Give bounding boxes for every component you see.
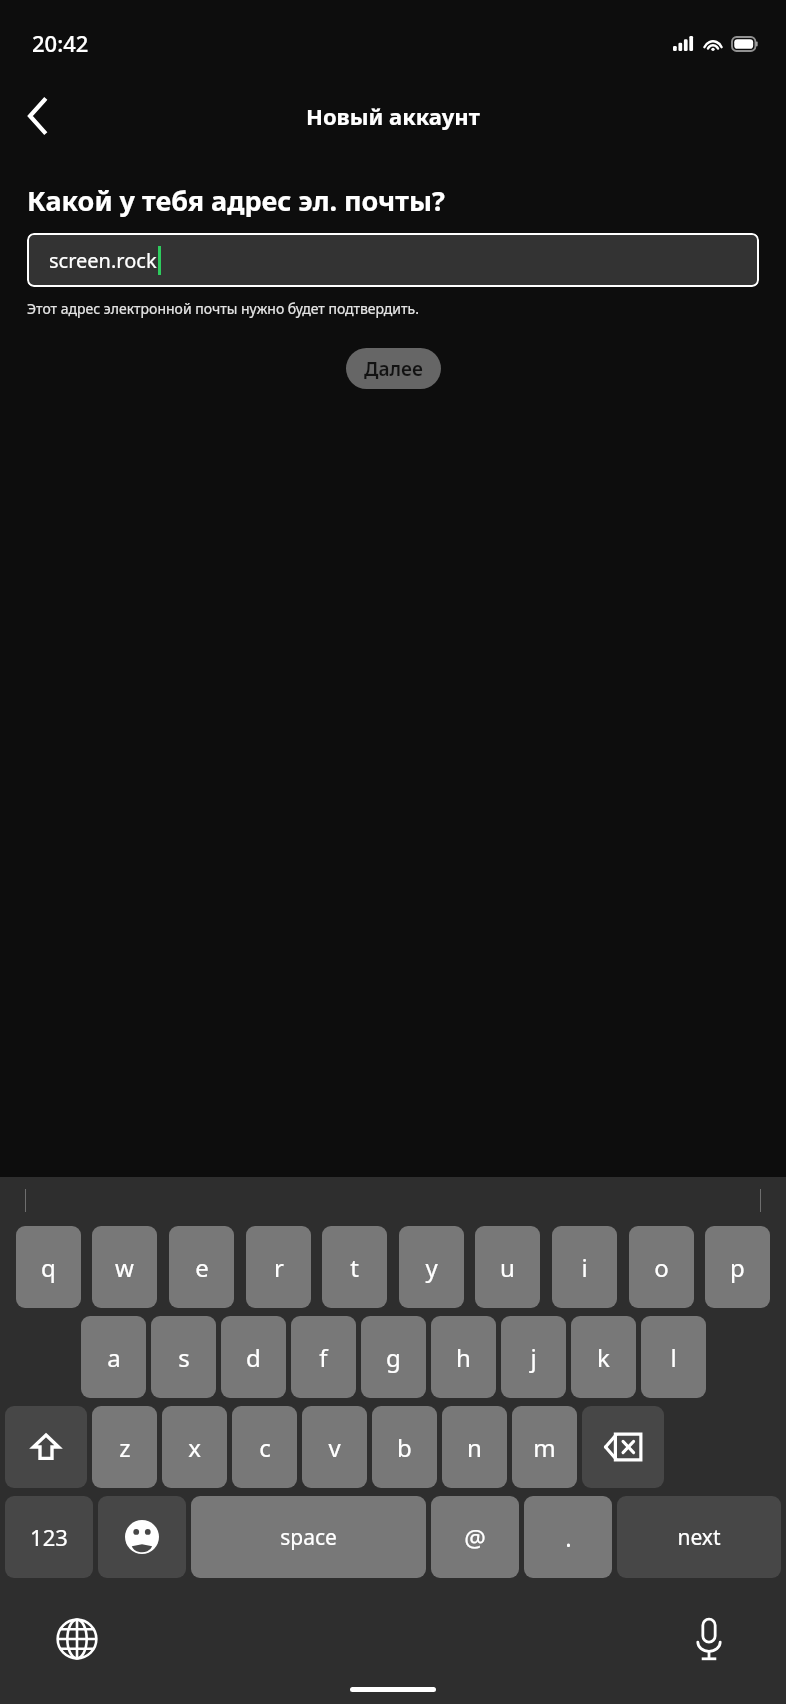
staticText: Этот адрес электронной почты нужно будет… [27, 299, 759, 318]
button[interactable]: y [399, 1226, 464, 1308]
button[interactable]: Эмодзи [98, 1496, 186, 1578]
button[interactable]: p [705, 1226, 770, 1308]
button[interactable]: e [169, 1226, 234, 1308]
button[interactable]: n [442, 1406, 507, 1488]
button[interactable]: z [92, 1406, 157, 1488]
button[interactable]: v [302, 1406, 367, 1488]
staticText: d [246, 1341, 261, 1374]
staticText: u [500, 1251, 515, 1284]
button[interactable]: x [162, 1406, 227, 1488]
staticText: s [178, 1341, 190, 1374]
button[interactable]: s [151, 1316, 216, 1398]
staticText: t [350, 1251, 359, 1284]
button[interactable]: o [629, 1226, 694, 1308]
button[interactable]: k [571, 1316, 636, 1398]
button[interactable]: Голосовой ввод [680, 1610, 738, 1668]
staticText: Далее [364, 356, 423, 382]
button[interactable]: m [512, 1406, 577, 1488]
button[interactable]: t [322, 1226, 387, 1308]
button[interactable]: @ [431, 1496, 519, 1578]
staticText: p [730, 1251, 745, 1284]
button[interactable]: Далее [346, 348, 441, 389]
button[interactable]: Shift [5, 1406, 87, 1488]
staticText: z [119, 1431, 131, 1464]
staticText: w [115, 1251, 134, 1284]
button[interactable]: i [552, 1226, 617, 1308]
button[interactable]: c [232, 1406, 297, 1488]
button[interactable]: j [501, 1316, 566, 1398]
staticText: space [280, 1523, 337, 1552]
button[interactable]: d [221, 1316, 286, 1398]
button[interactable]: space [191, 1496, 426, 1578]
staticText: r [274, 1251, 284, 1284]
button[interactable]: Сменить язык [48, 1610, 106, 1668]
button[interactable]: . [524, 1496, 612, 1578]
staticText: o [654, 1251, 669, 1284]
staticText: c [259, 1431, 271, 1464]
button[interactable]: Удалить [582, 1406, 664, 1488]
button[interactable]: l [641, 1316, 706, 1398]
button[interactable]: u [475, 1226, 540, 1308]
staticText: j [530, 1341, 537, 1374]
button[interactable]: r [246, 1226, 311, 1308]
button[interactable]: screen.rock [27, 233, 759, 287]
staticText: m [533, 1431, 556, 1464]
button[interactable]: g [361, 1316, 426, 1398]
staticText: Какой у тебя адрес эл. почты? [27, 182, 759, 219]
staticText: a [107, 1341, 121, 1374]
staticText: Новый аккаунт [306, 101, 480, 131]
button[interactable]: Назад [10, 88, 66, 144]
button[interactable]: b [372, 1406, 437, 1488]
staticText: y [425, 1251, 438, 1284]
staticText: next [677, 1523, 721, 1552]
button[interactable]: h [431, 1316, 496, 1398]
staticText: h [456, 1341, 471, 1374]
staticText: x [188, 1431, 201, 1464]
staticText: l [670, 1341, 677, 1374]
staticText: i [581, 1251, 588, 1284]
button[interactable]: next [617, 1496, 781, 1578]
staticText: 123 [30, 1522, 68, 1552]
staticText: b [397, 1431, 412, 1464]
button[interactable]: w [92, 1226, 157, 1308]
button[interactable]: 123 [5, 1496, 93, 1578]
staticText: g [386, 1341, 401, 1374]
staticText: screen.rock [49, 247, 157, 274]
staticText: e [195, 1251, 209, 1284]
staticText: q [41, 1251, 56, 1284]
staticText: . [565, 1521, 572, 1554]
staticText: f [319, 1341, 328, 1374]
staticText: v [328, 1431, 341, 1464]
button[interactable]: a [81, 1316, 146, 1398]
staticText: @ [464, 1521, 486, 1554]
staticText: 20:42 [32, 28, 89, 58]
button[interactable]: q [16, 1226, 81, 1308]
button[interactable]: f [291, 1316, 356, 1398]
staticText: k [597, 1341, 610, 1374]
staticText: n [467, 1431, 482, 1464]
